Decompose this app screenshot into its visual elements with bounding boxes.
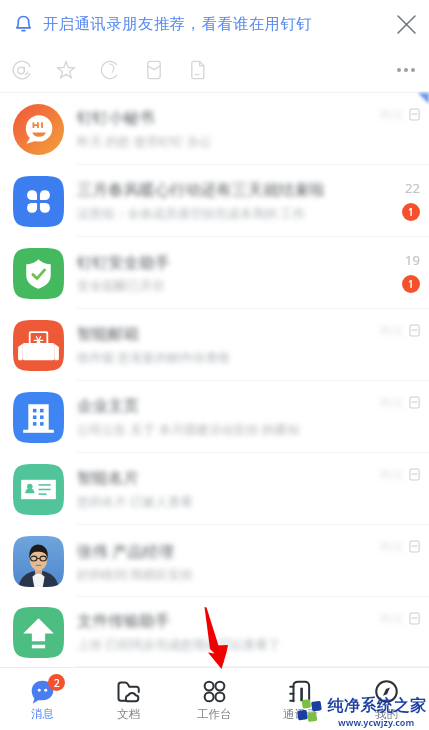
staticText: 智能邮箱 — [77, 324, 139, 344]
button[interactable]: 张伟 产品经理 — [0, 525, 429, 597]
button[interactable]: 文档 — [85, 678, 171, 721]
staticText: 我的 — [375, 707, 398, 721]
staticText: 企业主页 — [77, 396, 139, 416]
staticText: 好的收到 我稍后安排 — [77, 566, 193, 583]
button[interactable]: 工作台 — [171, 678, 257, 721]
staticText: 上传 已经同步完成您现在可以查看了 — [77, 636, 281, 653]
staticText: 22 — [405, 179, 420, 197]
staticText: 通讯录 — [283, 707, 318, 721]
button[interactable]: moon — [88, 47, 132, 92]
staticText: 文档 — [117, 707, 140, 721]
staticText: 张伟 产品经理 — [77, 540, 175, 561]
staticText: 昨天 的您 使用钉钉 办公 — [77, 133, 212, 150]
button[interactable]: 三月春风暖心行动还有三天就结束啦 — [0, 165, 429, 237]
staticText: 工作台 — [197, 707, 232, 721]
staticText: 文件传输助手 — [77, 611, 170, 631]
button[interactable]: 钉钉小秘书 — [0, 93, 429, 165]
button[interactable]: 通讯录 — [257, 678, 343, 721]
staticText: 钉钉安全助手 — [77, 253, 170, 273]
staticText: 三月春风暖心行动还有三天就结束啦 — [77, 180, 325, 200]
staticText: 收件箱 您有新的邮件待查收 — [77, 349, 231, 366]
button[interactable]: 我的 — [343, 678, 429, 721]
button[interactable]: 2 — [0, 678, 85, 721]
staticText: 公司公告 关于 本月团建活动安排 的通知 — [77, 421, 300, 438]
staticText: 1 — [408, 277, 414, 291]
staticText: 消息 — [31, 707, 54, 721]
staticText: 安全提醒已开启 — [77, 278, 165, 294]
button[interactable]: doc — [176, 47, 220, 92]
staticText: 开启通讯录朋友推荐，看看谁在用钉钉 — [43, 14, 313, 33]
button[interactable]: star — [44, 47, 88, 92]
button[interactable]: at — [0, 47, 44, 92]
staticText: 1 — [408, 205, 414, 219]
staticText: 您的名片 已被人查看 — [77, 493, 193, 510]
staticText: 2 — [54, 676, 60, 690]
button[interactable]: 企业主页 — [0, 381, 429, 453]
button[interactable]: 智能名片 — [0, 453, 429, 525]
button[interactable]: inbox — [132, 47, 176, 92]
staticText: 钉钉小秘书 — [77, 108, 155, 128]
button[interactable]: Close — [383, 1, 429, 47]
button[interactable]: More — [383, 47, 429, 92]
button[interactable]: 智能邮箱 — [0, 309, 429, 381]
button[interactable]: 文件传输助手 — [0, 597, 429, 667]
staticText: 纯净系统之家 — [327, 696, 426, 716]
staticText: www.ycwjzy.com — [338, 716, 415, 728]
staticText: 智能名片 — [77, 468, 139, 488]
staticText: 19 — [405, 251, 420, 269]
button[interactable]: 钉钉安全助手 — [0, 237, 429, 309]
staticText: 运营组：全体成员请尽快完成本周的 工作 — [77, 205, 306, 222]
